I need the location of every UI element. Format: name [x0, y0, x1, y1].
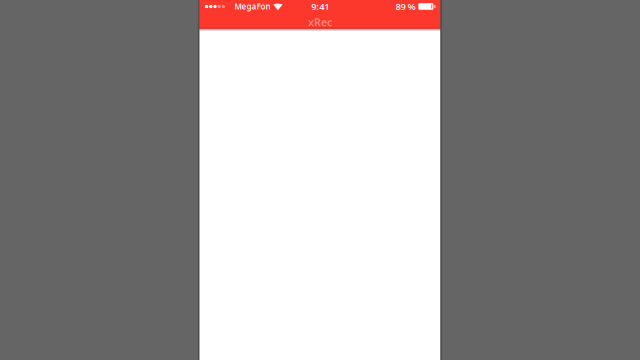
staticText: xRec — [308, 15, 332, 29]
staticText: 9:41 — [311, 0, 329, 13]
staticText: MegaFon — [234, 1, 270, 12]
button[interactable]: xRec — [199, 13, 440, 28]
staticText: 89 % — [395, 0, 415, 13]
